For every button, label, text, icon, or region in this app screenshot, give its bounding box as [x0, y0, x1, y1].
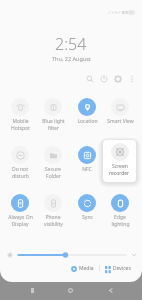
staticText: Always On — [8, 214, 33, 221]
button[interactable]: Media — [68, 264, 97, 273]
staticText: Location — [77, 118, 98, 125]
button[interactable]: Sync — [70, 194, 104, 221]
button[interactable]: Blue light — [36, 98, 70, 132]
staticText: visibility — [44, 221, 63, 228]
staticText: Devices — [113, 265, 131, 272]
staticText: disturb — [12, 173, 29, 180]
button[interactable]: Devices — [102, 264, 134, 273]
button[interactable]: Do not — [3, 146, 37, 180]
button[interactable]: Location — [70, 98, 104, 125]
staticText: Edge — [114, 214, 126, 221]
staticText: Hotspot — [11, 125, 30, 132]
staticText: Display — [11, 221, 29, 228]
staticText: Sync — [82, 214, 93, 221]
staticText: Do not — [12, 166, 28, 173]
button[interactable]: Screen — [103, 140, 136, 182]
staticText: Secure — [45, 166, 61, 173]
button[interactable]: Power off — [97, 72, 111, 86]
staticText: 2:54 — [55, 33, 87, 55]
staticText: Media — [79, 265, 94, 272]
button[interactable]: More options — [125, 72, 139, 86]
button[interactable]: Always On — [3, 194, 37, 228]
button[interactable]: Back — [103, 282, 119, 298]
staticText: Phone — [45, 214, 61, 221]
staticText: recorder — [109, 170, 130, 177]
staticText: lighting — [111, 221, 130, 228]
staticText: Thu, 22 August — [52, 55, 91, 62]
button[interactable]: Recents — [24, 282, 40, 298]
staticText: Mobile — [12, 118, 29, 125]
staticText: Blue light — [42, 118, 65, 125]
staticText: Screen — [112, 163, 128, 170]
button[interactable]: Settings — [111, 72, 125, 86]
button[interactable]: Edge — [103, 194, 137, 228]
staticText: Folder — [46, 173, 61, 180]
button[interactable]: Expand brightness — [130, 251, 138, 259]
staticText: NFC — [82, 166, 92, 173]
button[interactable]: Phone — [36, 194, 70, 228]
button[interactable]: Home — [62, 282, 78, 298]
staticText: filter — [48, 125, 59, 132]
button[interactable]: Secure — [36, 146, 70, 180]
button[interactable]: Smart View — [103, 98, 137, 125]
button[interactable]: NFC — [70, 146, 104, 173]
button[interactable]: Mobile — [3, 98, 37, 132]
button[interactable]: Search — [83, 72, 97, 86]
staticText: Smart View — [107, 118, 134, 125]
